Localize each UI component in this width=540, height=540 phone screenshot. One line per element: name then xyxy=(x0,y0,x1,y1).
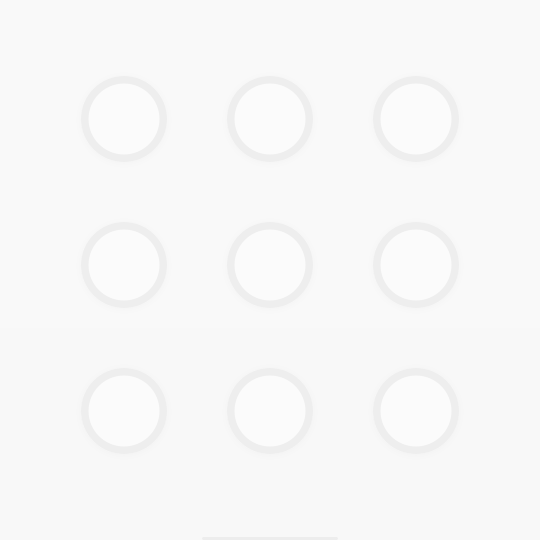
button[interactable]: Four xyxy=(81,222,167,308)
button[interactable]: Two xyxy=(227,76,313,162)
button[interactable]: Eight xyxy=(227,368,313,454)
button[interactable]: Seven xyxy=(81,368,167,454)
button[interactable]: Nine xyxy=(373,368,459,454)
button[interactable]: Six xyxy=(373,222,459,308)
button[interactable]: Five xyxy=(227,222,313,308)
button[interactable]: Three xyxy=(373,76,459,162)
button[interactable]: One xyxy=(81,76,167,162)
